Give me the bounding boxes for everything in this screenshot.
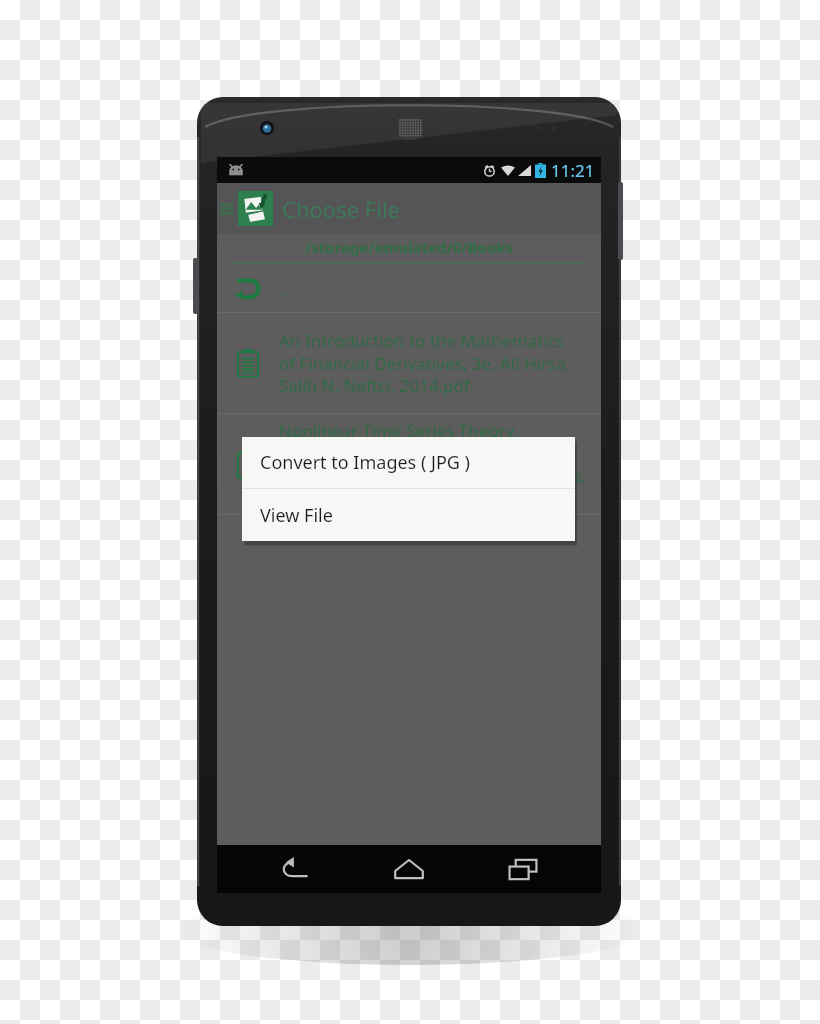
- staticText: /storage/emulated/0/Books: [217, 237, 601, 257]
- staticText: Convert to Images ( JPG ): [260, 450, 470, 475]
- staticText: An Introduction to the Mathematics of Fi…: [279, 329, 583, 397]
- staticText: View File: [260, 503, 333, 528]
- staticText: ..: [279, 277, 289, 300]
- button[interactable]: Menu: [217, 183, 601, 234]
- button[interactable]: Nonlinear Time Series Theory, Methods an…: [217, 414, 601, 514]
- button[interactable]: An Introduction to the Mathematics of Fi…: [217, 313, 601, 413]
- button[interactable]: ..: [217, 264, 601, 312]
- button[interactable]: Recent apps: [487, 847, 559, 891]
- button[interactable]: Home: [373, 847, 445, 891]
- button[interactable]: Back: [259, 847, 331, 891]
- staticText: 11:21: [551, 159, 595, 182]
- button[interactable]: Convert to Images ( JPG ): [242, 437, 575, 488]
- other: Menu: [219, 198, 235, 220]
- staticText: Choose File: [282, 194, 400, 224]
- button[interactable]: View File: [242, 489, 575, 541]
- staticText: Nonlinear Time Series Theory, Methods an…: [279, 419, 591, 509]
